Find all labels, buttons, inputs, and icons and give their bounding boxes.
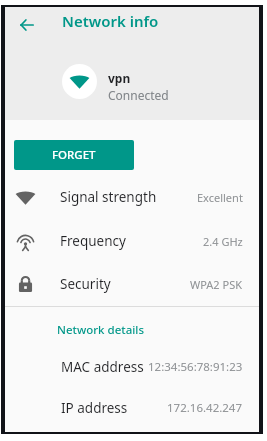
button[interactable]: Security (5, 270, 259, 298)
button[interactable]: FORGET (14, 140, 134, 170)
button[interactable]: MAC address (5, 353, 259, 381)
staticText: Network info (62, 11, 159, 31)
staticText: 12:34:56:78:91:23 (148, 359, 243, 375)
staticText: Network details (57, 322, 145, 338)
button[interactable]: Back (13, 11, 41, 39)
staticText: WPA2 PSK (190, 277, 243, 292)
staticText: MAC address (61, 358, 144, 376)
staticText: Excellent (197, 190, 243, 205)
staticText: vpn (108, 70, 131, 86)
staticText: Frequency (60, 232, 126, 250)
button[interactable]: IP address (5, 394, 259, 422)
staticText: Signal strength (60, 188, 157, 206)
staticText: IP address (61, 399, 128, 417)
staticText: 172.16.42.247 (167, 400, 243, 416)
staticText: Security (60, 275, 111, 293)
staticText: FORGET (52, 147, 96, 163)
button[interactable]: Frequency (5, 227, 259, 255)
staticText: 2.4 GHz (203, 234, 243, 249)
staticText: Connected (108, 87, 169, 103)
button[interactable]: Signal strength (5, 183, 259, 211)
